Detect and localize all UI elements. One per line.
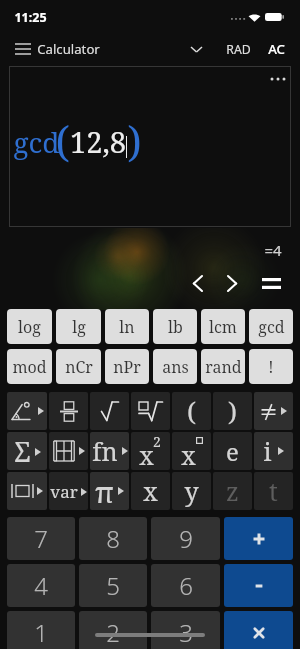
button[interactable]: Square (131, 432, 170, 470)
staticText: 5 (106, 569, 120, 602)
staticText: =4 (264, 240, 282, 260)
button[interactable]: 2 (79, 611, 147, 649)
staticText: ( (187, 393, 196, 428)
staticText: z (226, 474, 239, 508)
button[interactable]: Nth root (131, 392, 170, 430)
staticText: ans (162, 356, 189, 378)
button[interactable]: Multiply (224, 611, 293, 649)
button[interactable]: AC (262, 33, 291, 65)
button[interactable]: 4 (7, 564, 75, 607)
staticText: ) (127, 113, 142, 169)
button[interactable]: 7 (7, 517, 75, 560)
staticText: 7 (34, 522, 48, 555)
staticText: ) (228, 393, 237, 428)
button[interactable]: Fraction (49, 392, 88, 430)
button[interactable]: gcd (249, 309, 293, 344)
staticText: log (18, 316, 41, 338)
button[interactable]: RAD (220, 33, 256, 65)
staticText: ! (268, 356, 274, 378)
button[interactable]: ! (249, 349, 293, 384)
button[interactable]: Next (217, 268, 247, 298)
button[interactable]: 6 (151, 564, 220, 607)
staticText: mod (12, 356, 47, 378)
button[interactable]: mod (7, 349, 52, 384)
button[interactable]: Menu (7, 33, 38, 65)
staticText: Calculator (37, 40, 100, 58)
button[interactable]: 8 (79, 517, 147, 560)
button[interactable]: Minus (224, 564, 293, 607)
button[interactable]: Euler number (213, 432, 252, 470)
staticText: ln (119, 316, 135, 338)
staticText: RAD (226, 41, 251, 58)
button[interactable]: lg (56, 309, 101, 344)
staticText: 11:25 (14, 9, 47, 26)
staticText: nPr (113, 356, 141, 378)
button[interactable]: Imaginary unit (254, 432, 293, 470)
button[interactable]: t (254, 472, 293, 510)
button[interactable]: 3 (151, 611, 220, 649)
button[interactable]: y (172, 472, 211, 510)
staticText: nCr (65, 356, 93, 378)
button[interactable]: ans (153, 349, 197, 384)
staticText: 4 (34, 569, 48, 602)
staticText: i (263, 434, 272, 468)
button[interactable]: lb (153, 309, 197, 344)
staticText: 12,8 (70, 122, 126, 161)
button[interactable]: Placeholder (7, 472, 47, 510)
button[interactable]: More options (265, 66, 291, 92)
staticText: 2 (106, 616, 120, 649)
staticText: 9 (179, 522, 193, 555)
staticText: t (269, 474, 278, 508)
staticText: x (181, 438, 196, 470)
button[interactable]: lcm (201, 309, 245, 344)
staticText: 6 (179, 569, 193, 602)
button[interactable]: ln (105, 309, 149, 344)
button[interactable]: Power (172, 432, 211, 470)
button[interactable]: Sum (7, 432, 47, 470)
staticText: e (226, 435, 239, 468)
button[interactable]: Plus (224, 517, 293, 560)
staticText: 1 (34, 616, 48, 649)
staticText: lb (168, 316, 183, 338)
staticText: 2 (153, 432, 161, 451)
staticText: AC (268, 40, 285, 58)
staticText: Σ (14, 433, 31, 470)
button[interactable]: Square root (90, 392, 129, 430)
staticText: ( (55, 113, 70, 169)
staticText: gcd (258, 316, 285, 338)
button[interactable]: Previous (182, 268, 212, 298)
button[interactable]: nCr (56, 349, 101, 384)
button[interactable]: Pi (90, 472, 129, 510)
staticText: y (184, 474, 199, 508)
button[interactable]: Angle (7, 392, 47, 430)
button[interactable]: 1 (7, 611, 75, 649)
staticText: rand (205, 356, 242, 378)
button[interactable]: Right parenthesis (213, 392, 252, 430)
button[interactable]: Functions (90, 432, 129, 470)
staticText: x (139, 438, 154, 470)
button[interactable]: Matrix (49, 432, 88, 470)
button[interactable]: nPr (105, 349, 149, 384)
button[interactable]: 9 (151, 517, 220, 560)
button[interactable]: More options (9, 66, 291, 227)
button[interactable]: z (213, 472, 252, 510)
button[interactable]: Equals (256, 268, 286, 298)
button[interactable]: x (131, 472, 170, 510)
staticText: gcd (13, 123, 60, 161)
button[interactable]: 5 (79, 564, 147, 607)
staticText: x (143, 474, 158, 508)
staticText: fn (92, 434, 118, 468)
staticText: var (50, 480, 78, 503)
button[interactable]: Expand history (182, 33, 211, 65)
button[interactable]: Variables (49, 472, 88, 510)
button[interactable]: log (7, 309, 52, 344)
button[interactable]: Comparison (254, 392, 293, 430)
staticText: 3 (179, 616, 193, 649)
button[interactable]: rand (201, 349, 245, 384)
staticText: π (95, 472, 114, 510)
staticText: lcm (209, 316, 237, 338)
button[interactable]: Calculator (37, 33, 100, 65)
staticText: 8 (106, 522, 120, 555)
staticText: lg (72, 316, 86, 338)
button[interactable]: Left parenthesis (172, 392, 211, 430)
